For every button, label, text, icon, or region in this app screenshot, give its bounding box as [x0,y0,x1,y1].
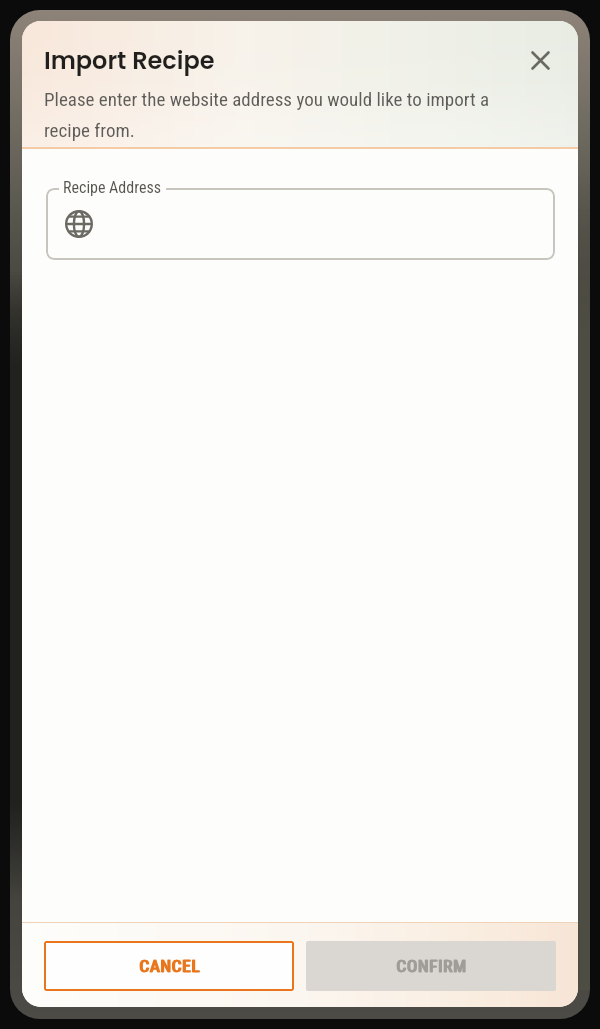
button[interactable]: CANCEL [44,941,294,991]
staticText: Recipe Address [63,178,162,197]
staticText: CANCEL [140,956,201,976]
staticText: CANCEL [139,956,200,976]
staticText: CONFIRM [397,956,468,976]
staticText: Please enter the website address you wou… [44,88,504,142]
button[interactable] [518,38,562,82]
staticText: CONFIRM [396,956,467,976]
button[interactable]: CONFIRM [306,941,556,991]
button[interactable] [46,188,555,260]
staticText: Import Recipe [44,44,215,78]
